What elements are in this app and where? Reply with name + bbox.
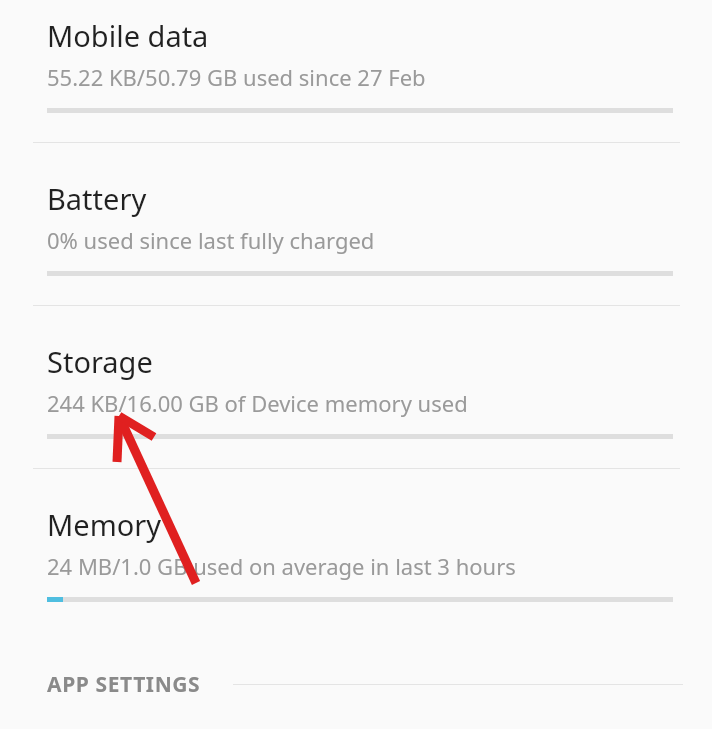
- staticText: 0% used since last fully charged: [47, 225, 375, 255]
- staticText: 55.22 KB/50.79 GB used since 27 Feb: [47, 62, 426, 92]
- staticText: Battery: [47, 179, 147, 218]
- staticText: 244 KB/16.00 GB of Device memory used: [47, 388, 468, 418]
- staticText: Storage: [47, 342, 153, 381]
- staticText: Memory: [47, 505, 162, 544]
- button[interactable]: Battery: [0, 142, 712, 276]
- staticText: APP SETTINGS: [47, 670, 201, 699]
- button[interactable]: Storage: [0, 305, 712, 439]
- button[interactable]: Mobile data: [0, 0, 712, 113]
- staticText: Mobile data: [47, 16, 209, 55]
- staticText: 24 MB/1.0 GB used on average in last 3 h…: [47, 551, 516, 581]
- button[interactable]: Memory: [0, 468, 712, 602]
